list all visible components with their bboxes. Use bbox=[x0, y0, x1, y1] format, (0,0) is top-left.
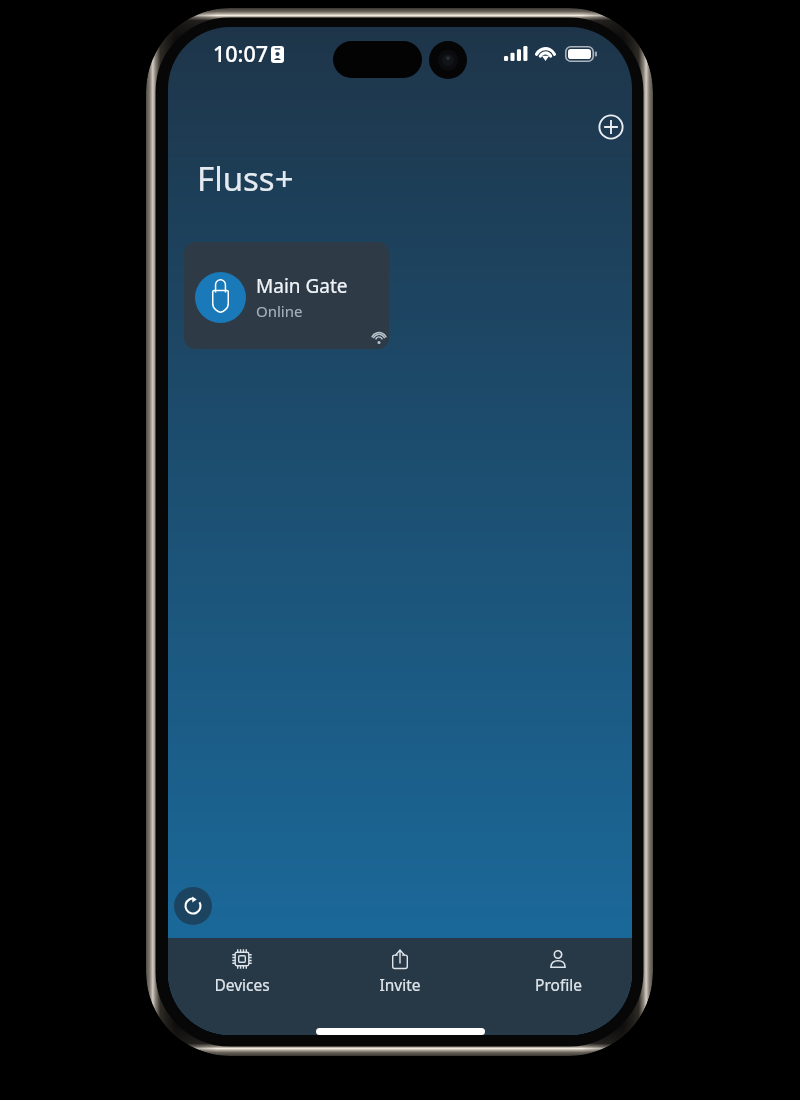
staticText: 10:07 bbox=[213, 39, 269, 68]
button[interactable]: Devices bbox=[182, 938, 302, 1035]
button[interactable]: Main Gate bbox=[184, 242, 389, 349]
staticText: Devices bbox=[214, 974, 270, 995]
button[interactable]: Profile bbox=[498, 938, 618, 1035]
staticText: Invite bbox=[379, 974, 421, 995]
staticText: Profile bbox=[535, 974, 582, 995]
staticText: Online bbox=[256, 301, 303, 321]
button[interactable]: Invite bbox=[340, 938, 460, 1035]
staticText: Main Gate bbox=[256, 273, 348, 299]
button[interactable]: Add device bbox=[592, 108, 630, 146]
button[interactable]: Refresh bbox=[174, 887, 212, 925]
staticText: Fluss+ bbox=[197, 156, 294, 201]
